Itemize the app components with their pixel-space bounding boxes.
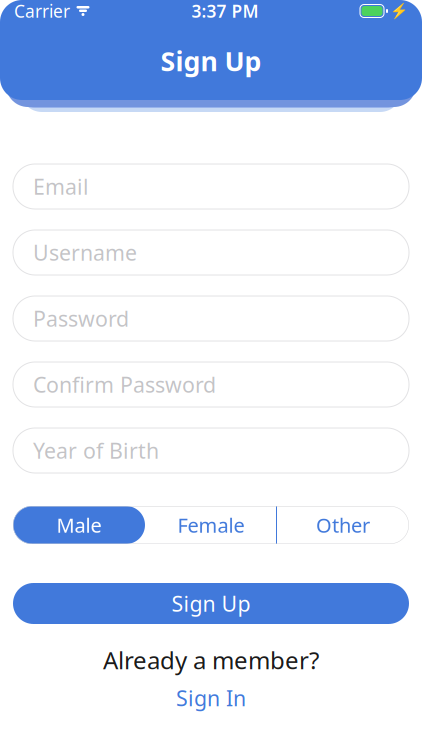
staticText: Already a member? (103, 644, 319, 676)
button[interactable]: Sign Up (13, 583, 409, 624)
staticText: Confirm Password (33, 370, 216, 399)
staticText: Year of Birth (33, 436, 159, 465)
staticText: Sign Up (171, 589, 250, 618)
button[interactable]: Female (145, 506, 277, 544)
staticText: Other (316, 512, 370, 538)
staticText: Male (56, 512, 101, 538)
staticText: Carrier (14, 0, 70, 22)
staticText: Sign In (176, 684, 246, 712)
staticText: 3:37 PM (191, 0, 258, 22)
staticText: Username (33, 238, 137, 267)
staticText: ⚡ (390, 3, 408, 19)
staticText: Password (33, 304, 129, 333)
staticText: Sign Up (160, 43, 261, 79)
staticText: Female (177, 512, 244, 538)
button[interactable]: Male (13, 506, 145, 544)
button[interactable]: Other (277, 506, 409, 544)
staticText: Email (33, 172, 89, 201)
button[interactable]: Sign In (166, 682, 256, 714)
